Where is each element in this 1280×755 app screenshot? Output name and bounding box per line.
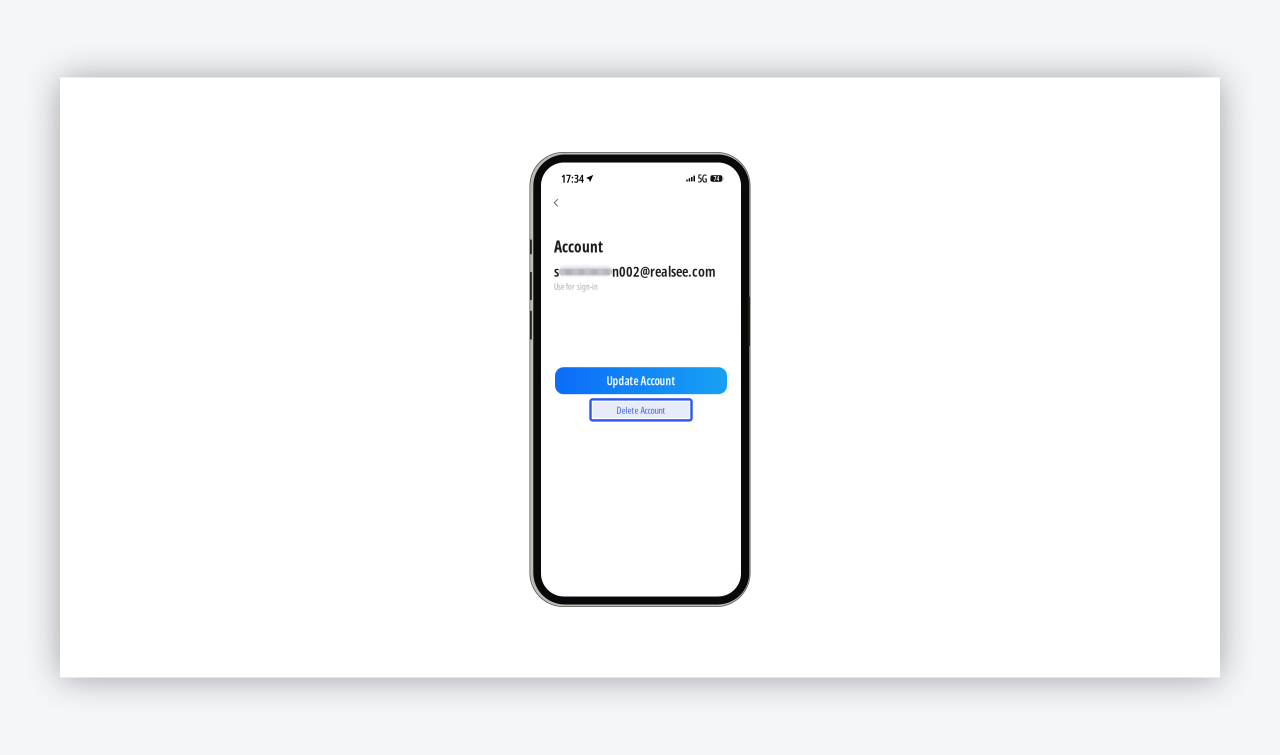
staticText: 5G [698,172,708,185]
button[interactable]: Back [541,186,741,215]
staticText: Delete Account [616,403,665,417]
staticText: 17:34 [561,171,584,186]
staticText: s [554,261,559,281]
staticText: n002@realsee.com [612,261,716,281]
staticText: 74 [713,174,719,183]
staticText: Account [554,236,603,257]
staticText: Update Account [606,373,675,389]
button[interactable]: Update Account [555,367,727,394]
button[interactable]: Delete Account [589,398,693,422]
staticText: Use for sign-in [554,281,598,292]
